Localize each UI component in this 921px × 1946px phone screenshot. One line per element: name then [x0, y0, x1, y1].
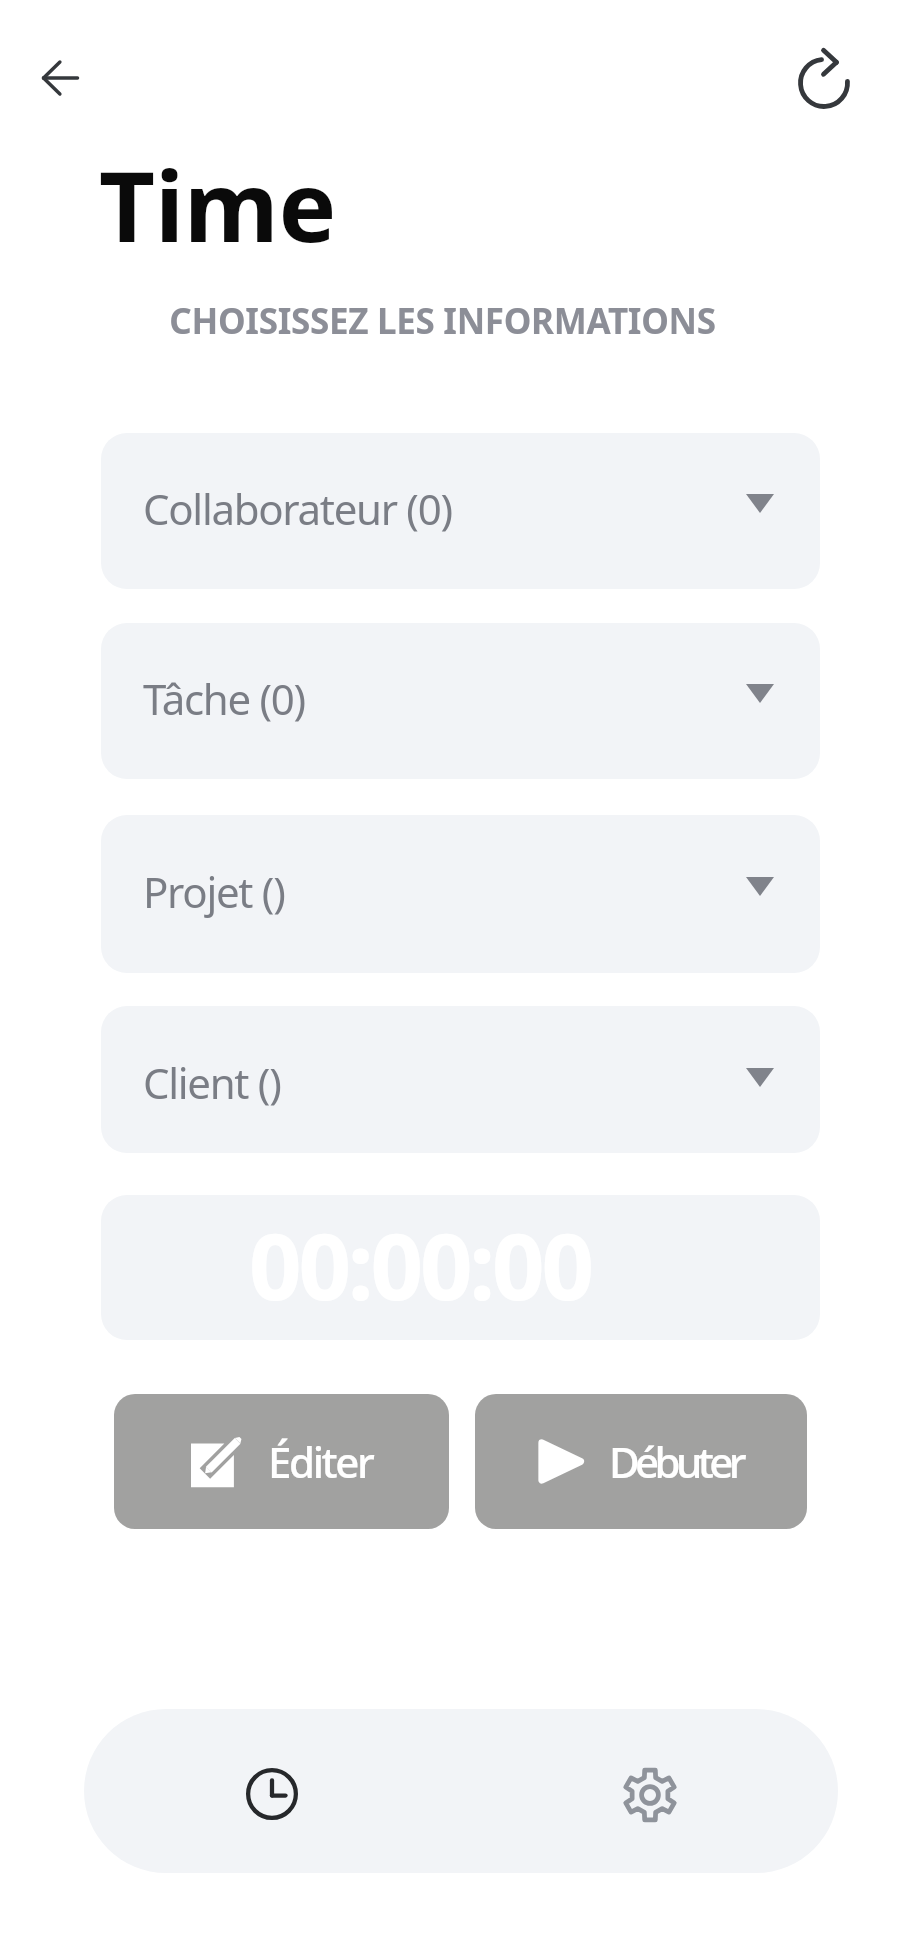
staticText: Projet ()	[143, 863, 285, 920]
button[interactable]: Débuter	[475, 1394, 807, 1529]
staticText: Time	[99, 138, 337, 270]
button[interactable]: Back	[28, 44, 96, 112]
button[interactable]: Collaborateur (0)	[101, 433, 820, 589]
staticText: 00:00:00	[249, 1202, 591, 1327]
button[interactable]: Client ()	[101, 1006, 820, 1153]
staticText: Tâche (0)	[143, 670, 305, 727]
staticText: Client ()	[143, 1054, 281, 1111]
button[interactable]: Time	[146, 1709, 398, 1873]
staticText: CHOISISSEZ LES INFORMATIONS	[0, 297, 903, 345]
staticText: Débuter	[609, 1433, 742, 1490]
button[interactable]: Refresh	[786, 45, 862, 121]
staticText: Éditer	[268, 1433, 373, 1490]
button[interactable]: Projet ()	[101, 815, 820, 973]
button[interactable]: Éditer	[114, 1394, 449, 1529]
staticText: Collaborateur (0)	[143, 480, 452, 537]
button[interactable]: Settings	[524, 1709, 776, 1873]
button[interactable]: Tâche (0)	[101, 623, 820, 779]
